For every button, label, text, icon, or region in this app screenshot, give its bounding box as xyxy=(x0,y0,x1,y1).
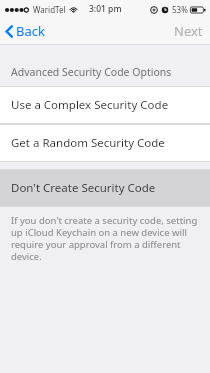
staticText: Use a Complex Security Code xyxy=(11,97,169,113)
staticText: 53% xyxy=(172,4,188,15)
staticText: Don't Create Security Code xyxy=(11,180,156,196)
button[interactable]: Back xyxy=(0,19,53,43)
staticText: Get a Random Security Code xyxy=(11,135,165,151)
button[interactable]: Get a Random Security Code xyxy=(0,125,210,161)
staticText: If you don't create a security code, set… xyxy=(11,214,199,263)
button[interactable]: Next xyxy=(164,18,210,44)
button[interactable]: Use a Complex Security Code xyxy=(0,87,210,123)
staticText: 3:01 pm xyxy=(89,3,122,15)
button[interactable]: Don't Create Security Code xyxy=(0,170,210,206)
staticText: Advanced Security Code Options xyxy=(11,65,172,79)
staticText: WaridTel xyxy=(33,4,66,15)
staticText: Back xyxy=(16,22,45,40)
staticText: Next xyxy=(174,22,203,40)
